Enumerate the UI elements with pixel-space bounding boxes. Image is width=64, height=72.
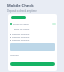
staticText: Mobile Check bbox=[7, 3, 34, 8]
button[interactable] bbox=[10, 62, 55, 66]
staticText: Deposit a check anytime bbox=[7, 9, 37, 13]
staticText: Deposit amount bbox=[12, 33, 30, 36]
staticText: Front of check bbox=[13, 22, 29, 25]
staticText: Deposit amount bbox=[12, 36, 30, 39]
staticText: Back of check bbox=[14, 27, 30, 30]
button[interactable] bbox=[11, 16, 26, 19]
staticText: Amount bbox=[10, 54, 19, 57]
staticText: Deposit amount bbox=[12, 39, 30, 42]
